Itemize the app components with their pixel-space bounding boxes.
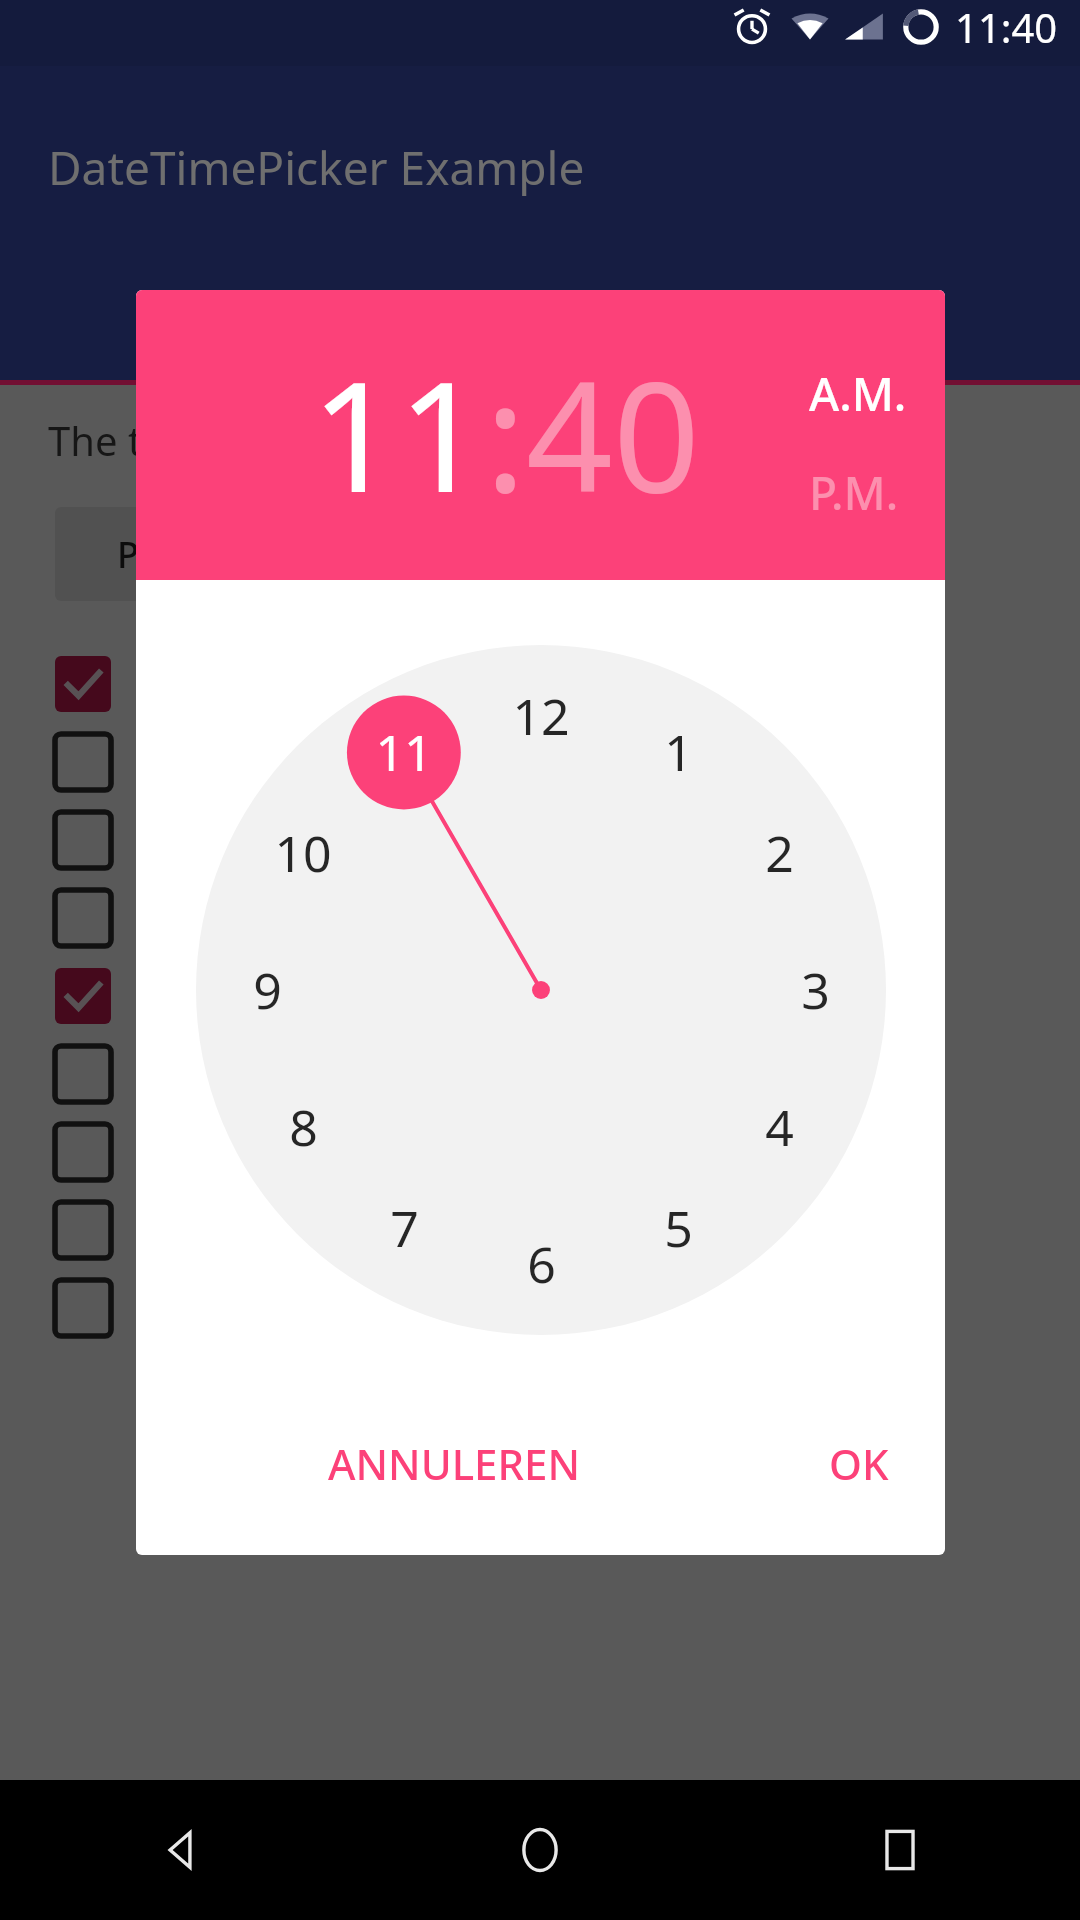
button[interactable]: PICK TIME (540, 336, 1080, 386)
staticText: ANNULEREN (328, 1435, 581, 1492)
staticText: : (485, 330, 526, 537)
staticText: 40 (526, 330, 700, 537)
button[interactable]: 11 (311, 330, 485, 537)
button[interactable]: Home (360, 1780, 720, 1920)
button[interactable]: A.M. (809, 362, 907, 425)
staticText: 3 (801, 956, 830, 1024)
staticText: 5 (664, 1194, 693, 1262)
staticText: 12 (512, 682, 570, 750)
staticText: 1 (664, 718, 693, 786)
staticText: Option (141, 1051, 252, 1097)
button[interactable]: Option (55, 1035, 1080, 1113)
staticText: Option (141, 1129, 252, 1175)
staticText: Option (141, 817, 252, 863)
staticText: A.M. (809, 362, 907, 425)
button[interactable]: Clock hour selector (196, 645, 886, 1335)
button[interactable]: Option (55, 957, 1080, 1035)
staticText: 9 (253, 956, 282, 1024)
button[interactable]: PICK DATE (0, 336, 540, 386)
staticText: 11 (375, 718, 433, 786)
staticText: The time is 11:40 (48, 413, 366, 467)
button[interactable]: Option (55, 879, 1080, 957)
staticText: Option (141, 973, 252, 1019)
button[interactable]: ANNULEREN (328, 1435, 581, 1492)
button[interactable]: Option (55, 1191, 1080, 1269)
staticText: Option (141, 895, 252, 941)
button[interactable]: OK (829, 1435, 889, 1492)
button[interactable]: Option (55, 1269, 1080, 1347)
staticText: DateTimePicker Example (48, 136, 585, 199)
button[interactable]: Back (0, 1780, 360, 1920)
button[interactable]: PICK TIME (55, 507, 355, 601)
staticText: 4 (765, 1093, 794, 1161)
staticText: 10 (274, 819, 332, 887)
staticText: 11:40 (955, 0, 1058, 54)
button[interactable]: Option (55, 1113, 1080, 1191)
staticText: PICK TIME (727, 338, 893, 384)
staticText: 7 (390, 1194, 419, 1262)
button[interactable]: Option (55, 801, 1080, 879)
staticText: PICK TIME (117, 530, 293, 579)
staticText: 6 (527, 1230, 556, 1298)
staticText: P.M. (809, 461, 899, 524)
button[interactable]: Recent apps (720, 1780, 1080, 1920)
button[interactable]: Option (55, 723, 1080, 801)
button[interactable]: P.M. (809, 461, 899, 524)
staticText: 8 (289, 1093, 318, 1161)
staticText: 11 (311, 330, 485, 537)
staticText: 2 (765, 819, 794, 887)
button[interactable]: Option (55, 645, 1080, 723)
button[interactable]: 40 (526, 330, 700, 537)
staticText: OK (829, 1435, 889, 1492)
